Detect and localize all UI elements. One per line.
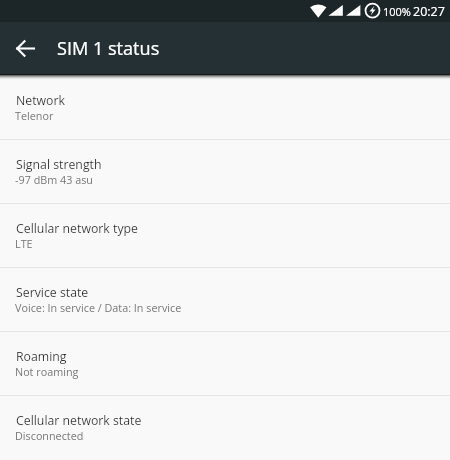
- staticText: -97 dBm 43 asu: [15, 172, 93, 187]
- staticText: Roaming: [16, 348, 67, 365]
- staticText: Telenor: [15, 108, 54, 123]
- button[interactable]: Roaming: [0, 332, 450, 395]
- staticText: Voice: In service / Data: In service: [15, 300, 182, 315]
- staticText: Cellular network type: [16, 220, 138, 237]
- staticText: Disconnected: [15, 428, 84, 443]
- staticText: Signal strength: [16, 156, 102, 173]
- staticText: LTE: [15, 236, 33, 251]
- button[interactable]: Navigate up: [0, 24, 48, 72]
- button[interactable]: Signal strength: [0, 140, 450, 203]
- staticText: Service state: [16, 284, 89, 301]
- staticText: Cellular network state: [16, 412, 142, 429]
- button[interactable]: Cellular network state: [0, 396, 450, 459]
- staticText: Not roaming: [15, 364, 79, 379]
- button[interactable]: Service state: [0, 268, 450, 331]
- staticText: Network: [16, 92, 65, 109]
- button[interactable]: Network: [0, 76, 450, 139]
- staticText: SIM 1 status: [57, 36, 160, 61]
- staticText: 20:27: [413, 3, 445, 20]
- staticText: 100%: [383, 4, 411, 19]
- button[interactable]: Cellular network type: [0, 204, 450, 267]
